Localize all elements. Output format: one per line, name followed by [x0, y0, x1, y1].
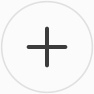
button[interactable]: Add	[0, 0, 94, 94]
